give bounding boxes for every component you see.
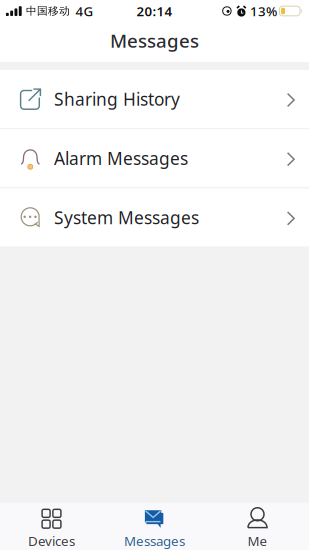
staticText: Sharing History bbox=[54, 87, 180, 110]
staticText: 13% bbox=[250, 2, 277, 20]
staticText: 4G bbox=[76, 2, 94, 20]
staticText: Messages bbox=[110, 28, 199, 53]
button[interactable]: Me bbox=[206, 502, 309, 550]
button[interactable]: Devices bbox=[0, 502, 103, 550]
button[interactable]: Messages bbox=[103, 502, 206, 550]
staticText: 20:14 bbox=[136, 2, 172, 20]
staticText: 中国移动 bbox=[26, 4, 70, 17]
staticText: System Messages bbox=[54, 206, 199, 229]
staticText: Alarm Messages bbox=[54, 147, 188, 170]
staticText: Messages bbox=[124, 532, 185, 550]
button[interactable]: Sharing History bbox=[0, 70, 309, 128]
staticText: Devices bbox=[28, 532, 75, 550]
button[interactable]: Alarm Messages bbox=[0, 129, 309, 187]
staticText: Me bbox=[247, 532, 267, 550]
button[interactable]: System Messages bbox=[0, 188, 309, 246]
